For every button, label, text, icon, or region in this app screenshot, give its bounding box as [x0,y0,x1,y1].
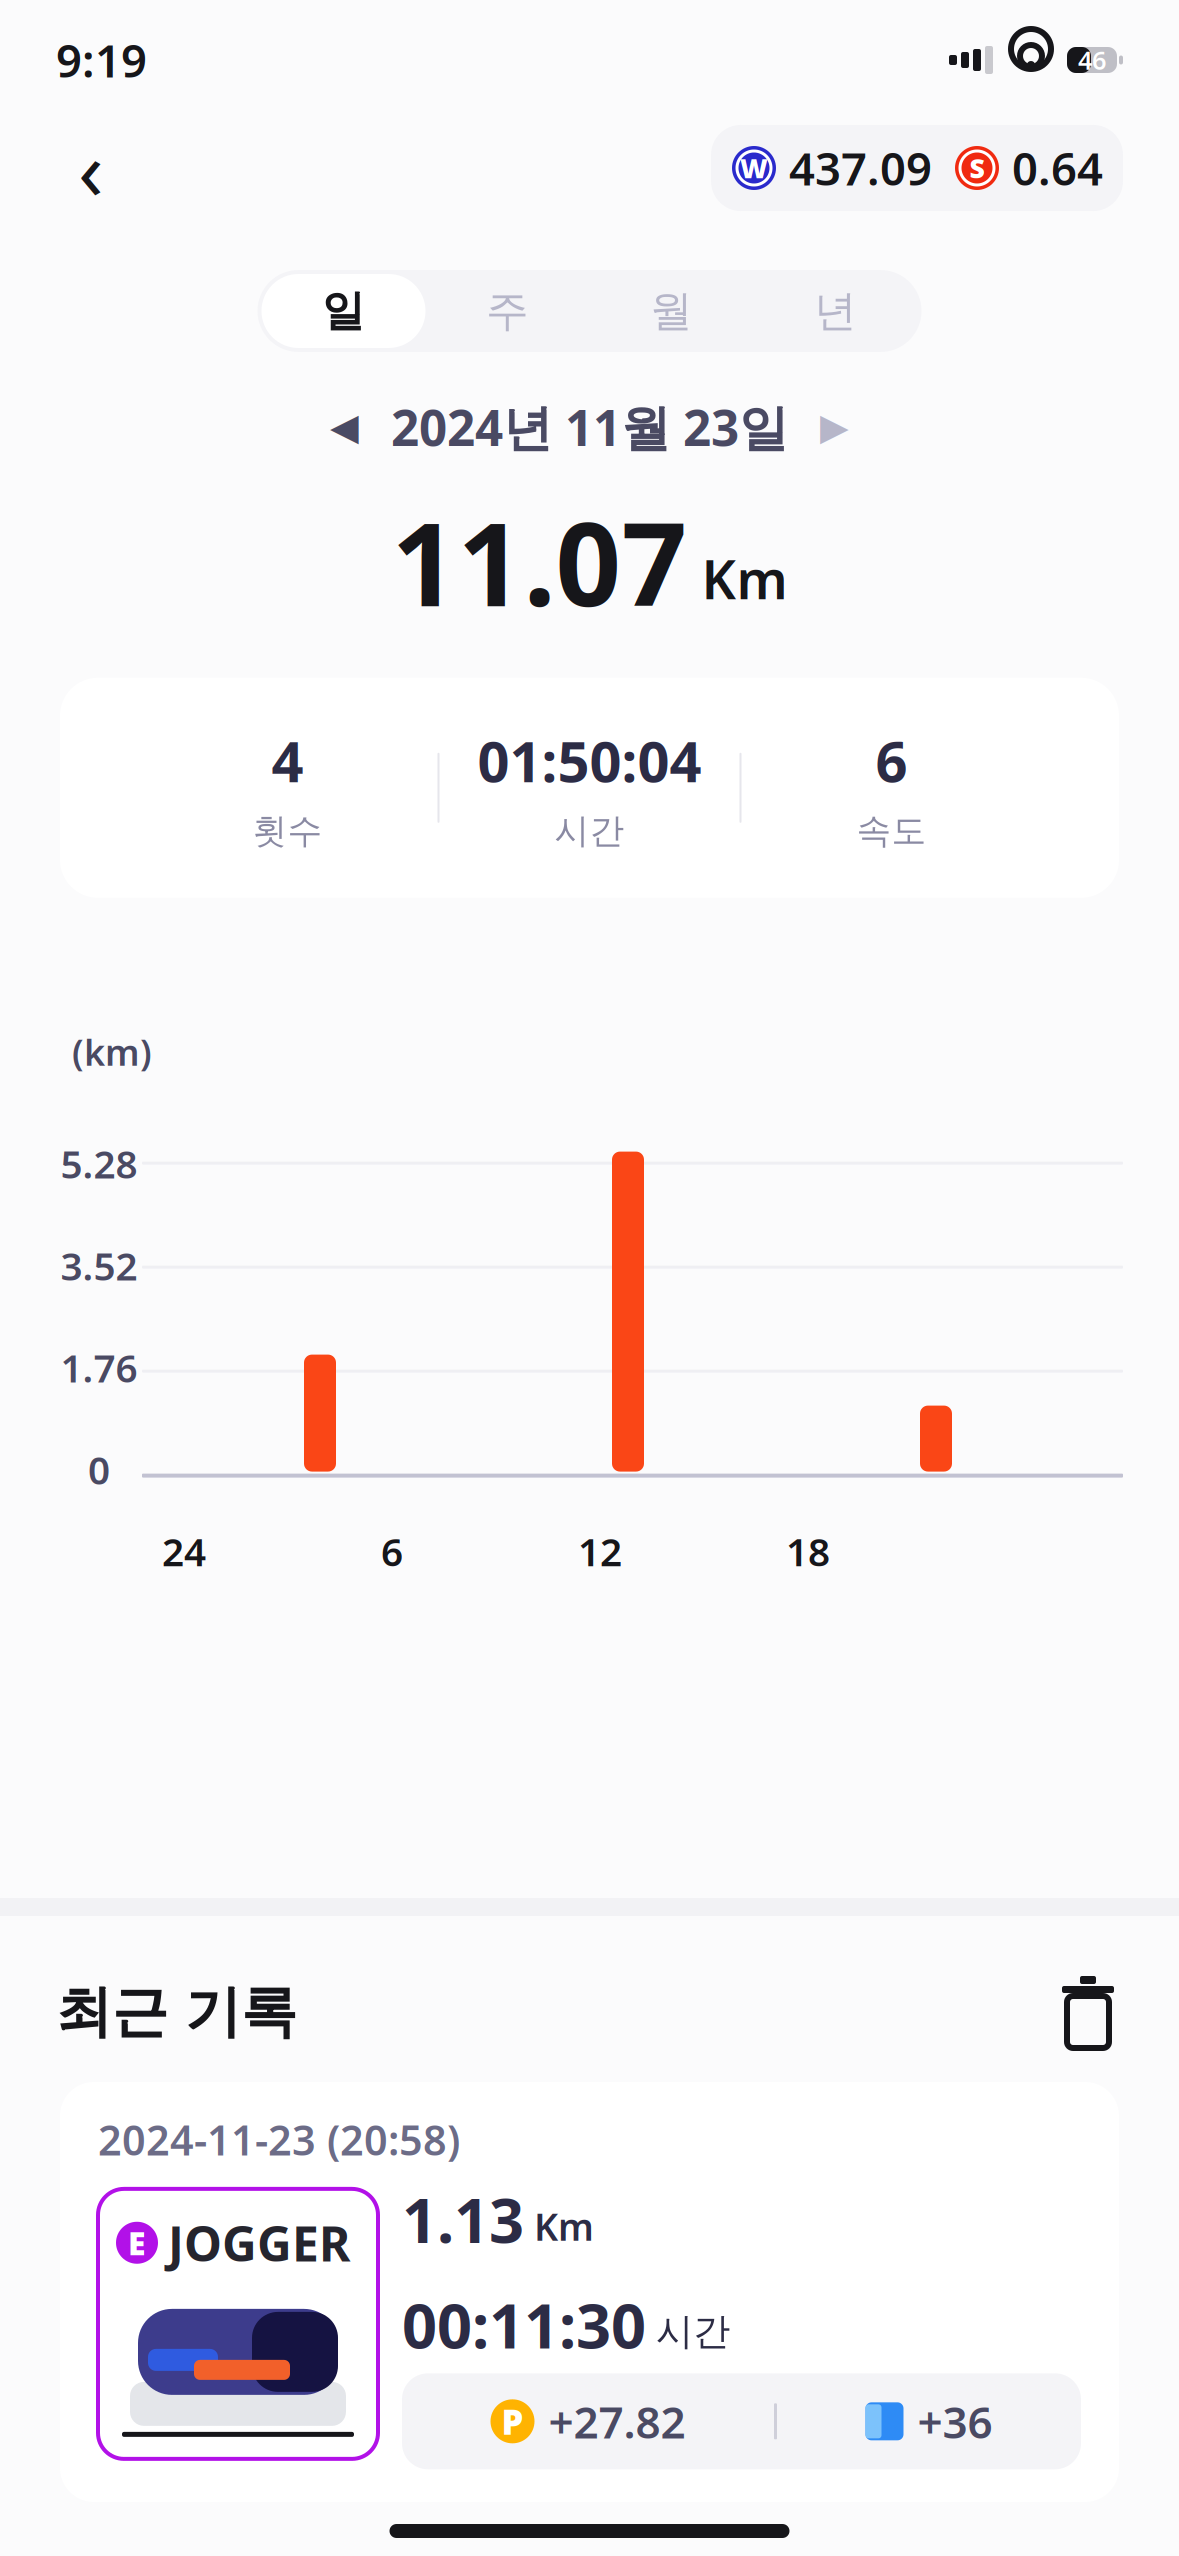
staticText: 24 [162,1526,206,1577]
staticText: (km) [72,1028,152,1076]
staticText: 437.09 [789,138,932,198]
button[interactable]: Next day [799,397,869,457]
staticText: Km [701,543,787,614]
staticText: W [740,150,768,186]
staticText: 2024년 11월 23일 [391,394,788,459]
staticText: JOGGER [168,2211,350,2275]
staticText: 4 [271,723,303,798]
staticText: 주 [486,285,529,337]
staticText: P [501,2398,523,2444]
staticText: 년 [814,285,857,337]
staticText: 0 [88,1444,110,1495]
staticText: 일 [322,285,365,337]
staticText: ‹ [78,113,104,223]
staticText: 월 [650,285,693,337]
staticText: 18 [786,1526,830,1577]
button[interactable]: 일 [261,274,425,348]
staticText: +36 [917,2392,992,2450]
staticText: 1.13 [402,2178,524,2260]
staticText: 9:19 [56,30,147,90]
staticText: 속도 [856,810,926,852]
button[interactable]: Back [56,130,126,206]
staticText: 46 [1078,43,1106,77]
staticText: 3.52 [60,1240,137,1291]
button[interactable]: Previous day [309,397,379,457]
staticText: E [128,2221,146,2264]
button[interactable]: 주 [425,274,589,348]
staticText: 시간 [554,810,624,852]
staticText: 6 [381,1526,403,1577]
button[interactable]: 월 [589,274,753,348]
staticText: 횟수 [252,810,322,852]
button[interactable]: 2024-11-23 (20:58) [60,2082,1119,2502]
staticText: ◀ [330,406,359,448]
staticText: 11.07 [391,485,687,638]
staticText: 00:11:30 [402,2284,646,2365]
staticText: S [969,150,984,186]
button[interactable]: 년 [753,274,917,348]
staticText: 0.64 [1012,138,1103,198]
staticText: +27.82 [548,2392,685,2450]
staticText: 최근 기록 [56,1978,297,2046]
staticText: 1.76 [60,1342,137,1393]
staticText: 5.28 [60,1138,137,1189]
staticText: 2024-11-23 (20:58) [98,2112,460,2167]
staticText: Km [534,2201,594,2251]
staticText: 01:50:04 [477,723,701,798]
staticText: 6 [875,723,907,798]
staticText: 12 [578,1526,622,1577]
button[interactable]: Delete records [1053,1972,1123,2052]
staticText: 시간 [656,2309,730,2355]
button[interactable]: W [711,125,1123,211]
staticText: ▶ [820,406,849,448]
